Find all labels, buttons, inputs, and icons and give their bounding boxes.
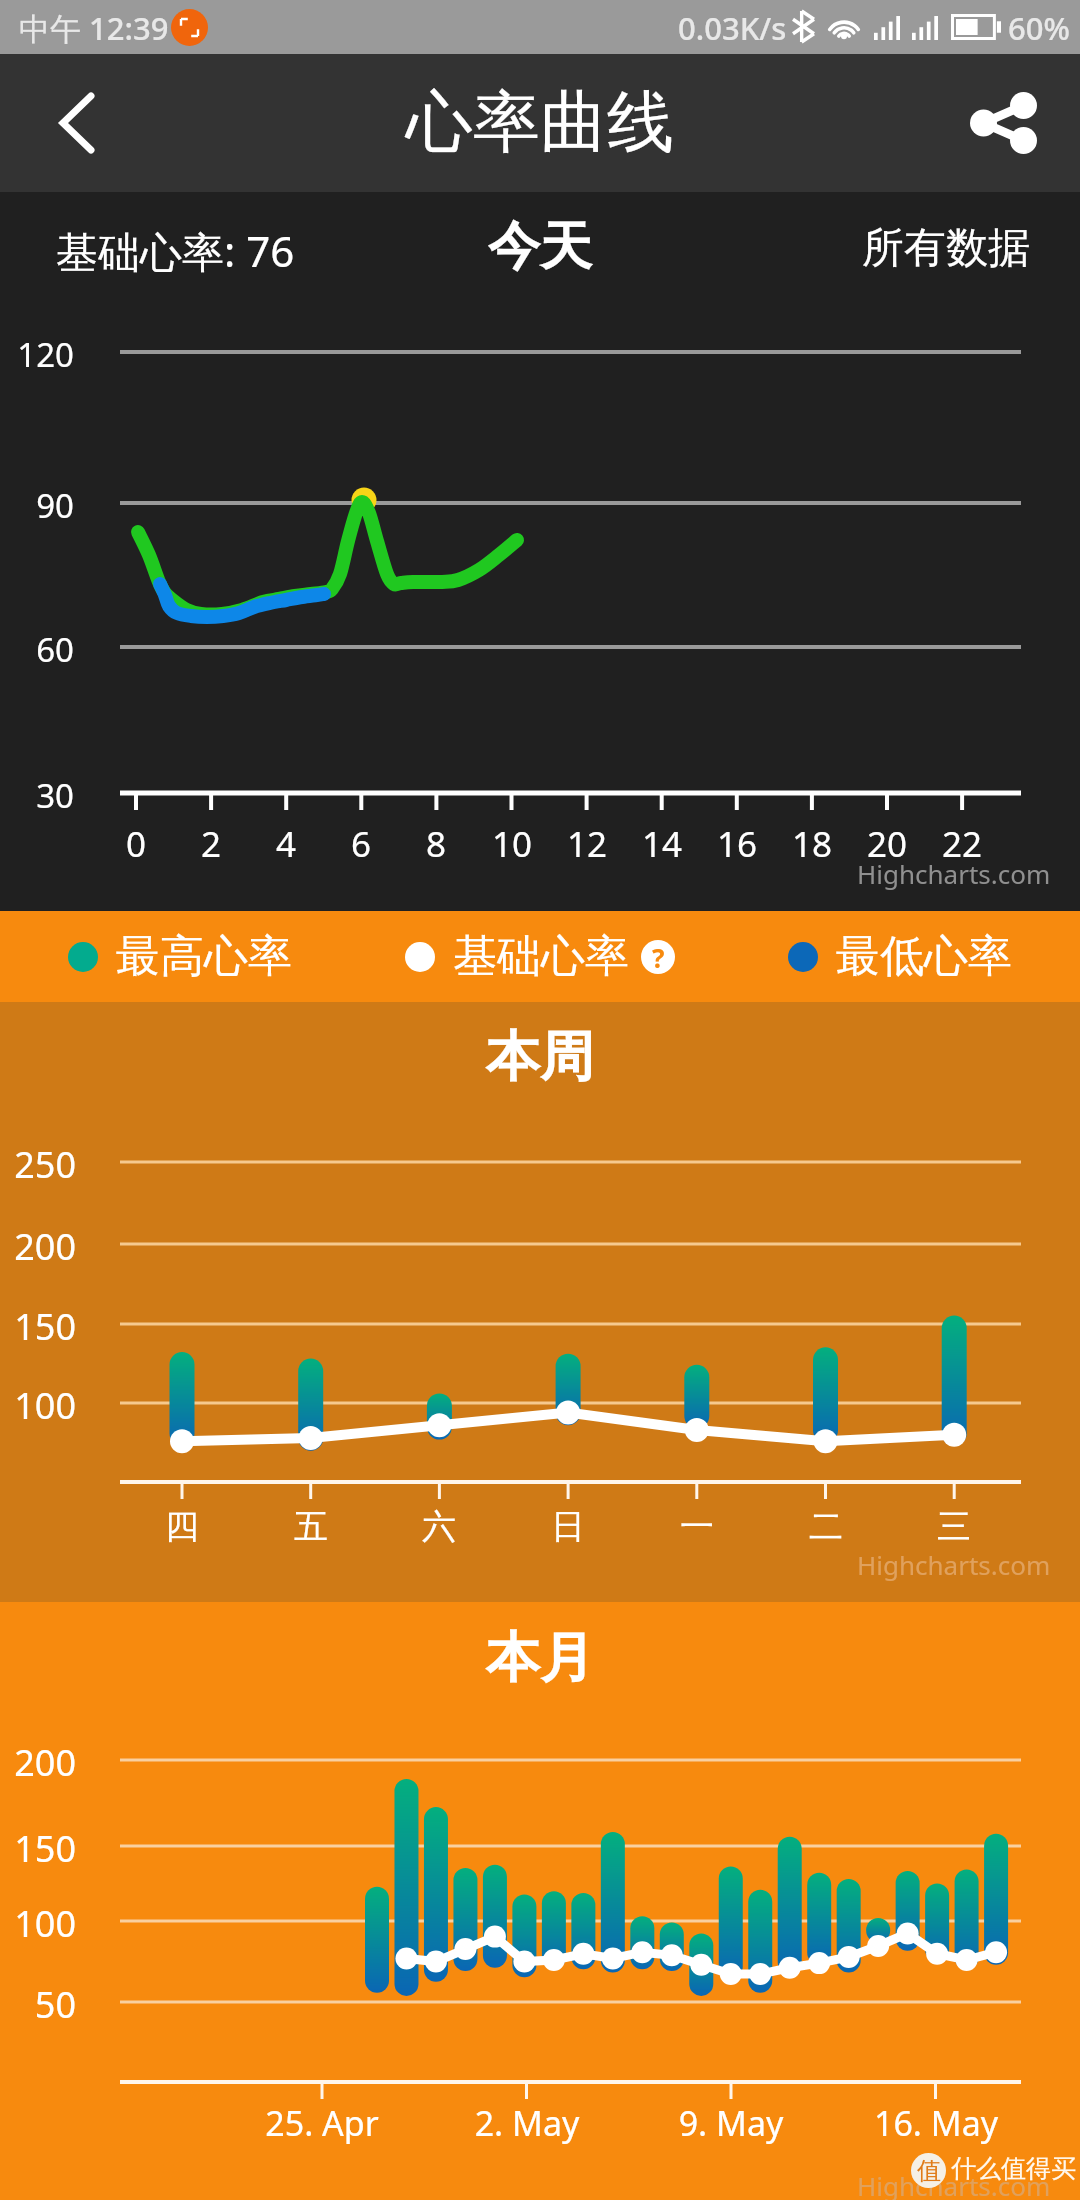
staticText: 250 (0, 1140, 76, 1189)
staticText: 今天 (488, 214, 592, 280)
staticText: 所有数据 (862, 222, 1030, 275)
staticText: 0.03K/s (678, 7, 787, 49)
staticText: 25. Apr (212, 2100, 432, 2146)
staticText: 9. May (621, 2100, 841, 2146)
staticText: 什么值得买 (951, 2153, 1076, 2184)
staticText: 六 (389, 1505, 489, 1548)
button[interactable]: 所有数据 (862, 192, 1080, 275)
staticText: 200 (0, 1222, 76, 1271)
staticText: 50 (0, 1980, 76, 2029)
staticText: 2. May (417, 2100, 637, 2146)
staticText: 16. May (826, 2100, 1046, 2146)
staticText: 14 (622, 820, 702, 868)
staticText: 150 (0, 1824, 76, 1873)
staticText: 五 (261, 1505, 361, 1548)
button[interactable]: 最低心率 (720, 911, 1080, 1002)
staticText: 中午 12:39 (19, 7, 169, 49)
staticText: 本月 (486, 1624, 594, 1692)
staticText: 10 (472, 820, 552, 868)
staticText: Highcharts.com (857, 2168, 1051, 2200)
staticText: 200 (0, 1738, 76, 1787)
staticText: 18 (772, 820, 852, 868)
staticText: 4 (246, 820, 326, 868)
staticText: 0 (96, 820, 176, 868)
button[interactable]: 基础心率 (360, 911, 720, 1002)
staticText: 值 (917, 2156, 941, 2186)
staticText: 60 (0, 627, 74, 672)
staticText: 90 (0, 483, 74, 528)
staticText: 心率曲线 (406, 80, 674, 164)
button[interactable]: 最高心率 (0, 911, 360, 1002)
staticText: 本周 (486, 1023, 594, 1091)
staticText: 12 (547, 820, 627, 868)
staticText: 100 (0, 1381, 76, 1430)
staticText: 120 (0, 332, 74, 377)
staticText: 6 (321, 820, 401, 868)
staticText: 16 (697, 820, 777, 868)
button[interactable]: Share (940, 54, 1080, 192)
staticText: 20 (847, 820, 927, 868)
staticText: 日 (518, 1505, 618, 1548)
staticText: Highcharts.com (857, 856, 1051, 891)
staticText: 四 (132, 1505, 232, 1548)
staticText: 基础心率 (453, 929, 629, 984)
staticText: 22 (922, 820, 1002, 868)
staticText: ? (652, 940, 665, 974)
staticText: 二 (776, 1505, 876, 1548)
staticText: 150 (0, 1302, 76, 1351)
staticText: 基础心率: 76 (56, 222, 295, 279)
staticText: 最低心率 (836, 929, 1012, 984)
staticText: 2 (171, 820, 251, 868)
staticText: 8 (396, 820, 476, 868)
staticText: 60% (1008, 7, 1070, 49)
staticText: 30 (0, 773, 74, 818)
staticText: Highcharts.com (857, 1547, 1051, 1582)
staticText: 三 (904, 1505, 1004, 1548)
staticText: 一 (647, 1505, 747, 1548)
button[interactable]: Back (0, 54, 140, 192)
staticText: 100 (0, 1899, 76, 1948)
staticText: 最高心率 (116, 929, 292, 984)
